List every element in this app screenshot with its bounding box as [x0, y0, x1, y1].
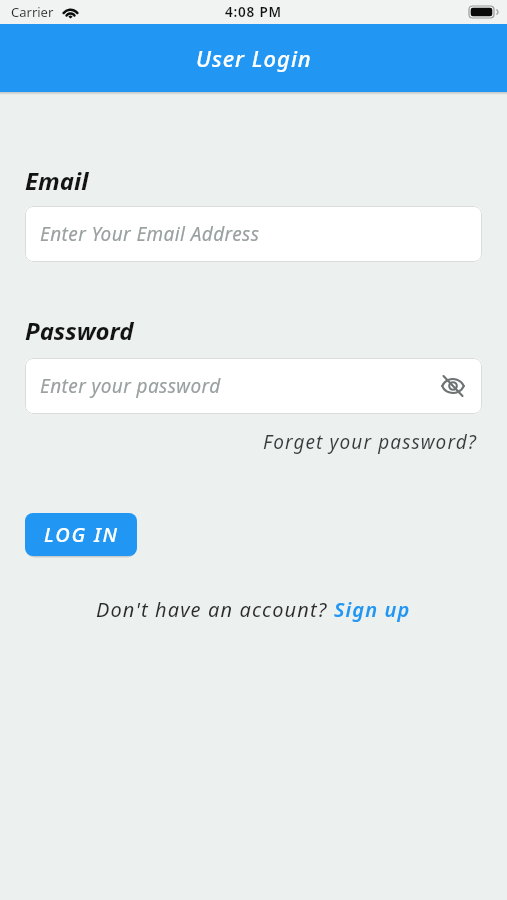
- button[interactable]: Enter Your Email Address: [25, 206, 482, 262]
- staticText: Email: [25, 164, 89, 197]
- staticText: Carrier: [11, 3, 54, 21]
- staticText: LOG IN: [44, 521, 119, 548]
- staticText: Password: [25, 314, 134, 347]
- button[interactable]: LOG IN: [25, 513, 137, 556]
- button[interactable]: Sign up: [334, 596, 411, 623]
- staticText: Don't have an account?: [96, 596, 334, 623]
- button[interactable]: [439, 372, 467, 400]
- button[interactable]: Forget your password?: [263, 429, 478, 455]
- staticText: Enter Your Email Address: [40, 221, 260, 247]
- button[interactable]: Enter your password: [25, 358, 482, 414]
- staticText: 4:08 PM: [225, 3, 282, 21]
- staticText: Enter your password: [40, 373, 221, 399]
- staticText: User Login: [196, 43, 312, 73]
